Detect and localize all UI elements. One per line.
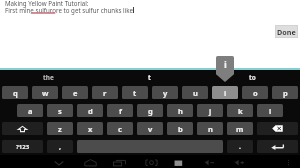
button[interactable]: Home — [84, 157, 97, 168]
staticText: i — [224, 88, 227, 98]
staticText: a — [28, 106, 33, 116]
button[interactable]: o — [242, 86, 268, 99]
staticText: m — [236, 124, 244, 134]
button[interactable]: f — [107, 104, 133, 117]
staticText: g — [148, 106, 153, 116]
button[interactable]: h — [167, 104, 193, 117]
button[interactable]: j — [197, 104, 223, 117]
staticText: z — [58, 124, 62, 134]
staticText: l — [269, 106, 272, 116]
staticText: the — [43, 73, 54, 82]
button[interactable]: Stop — [172, 157, 185, 168]
staticText: s — [58, 106, 62, 116]
button[interactable]: Recent apps — [113, 157, 126, 168]
staticText: p — [283, 88, 288, 98]
button[interactable]: the — [0, 70, 98, 85]
button[interactable]: t — [99, 70, 199, 85]
button[interactable]: to — [202, 70, 300, 85]
staticText: r — [103, 88, 107, 98]
staticText: to — [249, 73, 256, 82]
staticText: x — [88, 124, 93, 134]
button[interactable]: g — [137, 104, 163, 117]
button[interactable]: Volume up — [233, 157, 246, 168]
staticText: o — [253, 88, 258, 98]
button[interactable]: u — [182, 86, 208, 99]
staticText: b — [178, 124, 183, 134]
staticText: k — [238, 106, 243, 116]
button[interactable]: t — [122, 86, 148, 99]
button[interactable]: i — [212, 86, 238, 99]
button[interactable]: q — [2, 86, 28, 99]
staticText: f — [119, 106, 122, 116]
button[interactable]: p — [272, 86, 298, 99]
staticText: t — [133, 88, 137, 98]
staticText: ?123 — [16, 143, 30, 151]
button[interactable]: z — [47, 122, 73, 135]
staticText: j — [209, 106, 212, 116]
button[interactable]: l — [257, 104, 283, 117]
button[interactable]: Enter — [257, 140, 298, 153]
staticText: n — [208, 124, 213, 134]
button[interactable]: w — [32, 86, 58, 99]
staticText: Making Yellow Paint Tutorial: — [5, 0, 89, 7]
button[interactable]: n — [197, 122, 223, 135]
staticText: . — [239, 142, 241, 152]
staticText: i — [224, 58, 227, 71]
staticText: e — [73, 88, 78, 98]
staticText: c — [118, 124, 122, 134]
button[interactable]: d — [77, 104, 103, 117]
button[interactable]: y — [152, 86, 178, 99]
button[interactable]: e — [62, 86, 88, 99]
button[interactable]: Backspace — [257, 122, 298, 135]
staticText: d — [88, 106, 93, 116]
staticText: u — [193, 88, 198, 98]
button[interactable]: r — [92, 86, 118, 99]
button[interactable]: k — [227, 104, 253, 117]
button[interactable]: ?123 — [2, 140, 43, 153]
staticText: t — [148, 73, 151, 82]
button[interactable]: Screenshot — [145, 157, 158, 168]
staticText: h — [178, 106, 183, 116]
staticText: w — [42, 88, 49, 98]
staticText: y — [163, 88, 168, 98]
button[interactable]: s — [47, 104, 73, 117]
button[interactable]: , — [47, 140, 73, 153]
button[interactable]: More options — [282, 157, 295, 168]
staticText: Done — [277, 27, 296, 37]
button[interactable]: Shift — [2, 122, 43, 135]
button[interactable]: c — [107, 122, 133, 135]
button[interactable]: a — [17, 104, 43, 117]
button[interactable]: . — [227, 140, 253, 153]
staticText: , — [59, 142, 61, 152]
staticText: q — [13, 88, 18, 98]
button[interactable]: Hide keyboard — [52, 157, 65, 168]
button[interactable]: b — [167, 122, 193, 135]
staticText: v — [148, 124, 153, 134]
button[interactable]: v — [137, 122, 163, 135]
staticText: First mine sulfurore to get sulfur chunk… — [5, 6, 135, 14]
button[interactable]: m — [227, 122, 253, 135]
button[interactable]: Volume down — [203, 157, 216, 168]
button[interactable]: x — [77, 122, 103, 135]
button[interactable]: Done — [275, 25, 298, 38]
